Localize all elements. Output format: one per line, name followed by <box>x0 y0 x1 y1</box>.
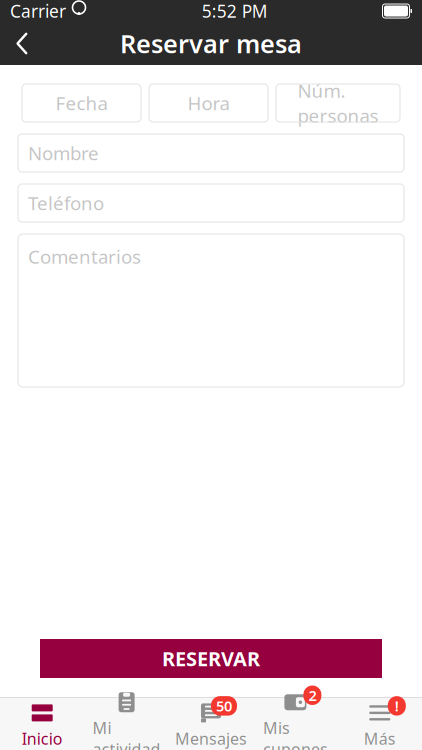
staticText: Reservar mesa <box>120 27 302 60</box>
button[interactable]: Teléfono <box>18 184 404 222</box>
button[interactable]: 2 <box>253 684 338 750</box>
staticText: ! <box>395 696 399 716</box>
staticText: Comentarios <box>28 244 141 269</box>
staticText: Teléfono <box>28 191 104 215</box>
staticText: Núm. personas <box>297 78 378 128</box>
button[interactable]: Núm. personas <box>276 84 400 122</box>
staticText: 50 <box>216 696 232 716</box>
staticText: RESERVAR <box>162 645 260 672</box>
staticText: Mis cupones <box>263 717 328 750</box>
button[interactable]: ! <box>338 695 422 750</box>
staticText: Hora <box>187 91 229 115</box>
button[interactable]: Back <box>0 22 44 65</box>
button[interactable]: 50 <box>169 695 253 750</box>
staticText: Más <box>364 728 396 749</box>
staticText: Mi actividad <box>93 717 161 750</box>
staticText: Inicio <box>22 728 63 749</box>
staticText: Nombre <box>28 141 99 165</box>
staticText: Carrier <box>10 0 66 22</box>
button[interactable]: Nombre <box>18 134 404 172</box>
button[interactable]: Hora <box>149 84 268 122</box>
staticText: 2 <box>308 685 316 705</box>
button[interactable]: RESERVAR <box>40 639 382 678</box>
button[interactable]: Mi actividad <box>84 684 169 750</box>
button[interactable]: Inicio <box>0 695 84 750</box>
staticText: Mensajes <box>175 728 247 749</box>
staticText: Fecha <box>55 91 107 115</box>
staticText: 5:52 PM <box>202 0 268 22</box>
button[interactable]: Comentarios <box>18 234 404 387</box>
button[interactable]: Fecha <box>22 84 141 122</box>
